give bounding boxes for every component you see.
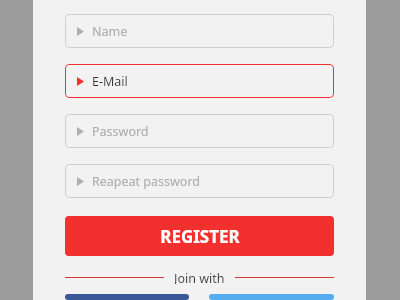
staticText: E-Mail — [92, 73, 128, 90]
button[interactable]: Reapeat password — [65, 164, 334, 198]
staticText: REGISTER — [160, 225, 240, 248]
button[interactable]: Name — [65, 14, 334, 48]
button[interactable]: Join with Facebook — [65, 294, 189, 300]
staticText: Join with — [174, 270, 225, 284]
staticText: Password — [92, 123, 149, 140]
staticText: Reapeat password — [92, 173, 201, 190]
button[interactable]: Password — [65, 114, 334, 148]
button[interactable]: REGISTER — [65, 216, 334, 256]
staticText: Name — [92, 23, 128, 40]
button[interactable]: E-Mail — [65, 64, 334, 98]
button[interactable]: Join with Twitter — [209, 294, 334, 300]
